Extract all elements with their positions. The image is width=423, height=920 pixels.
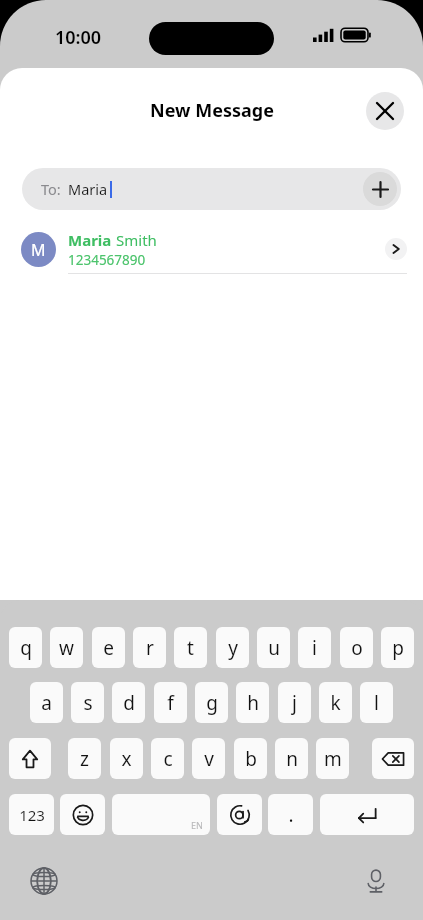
staticText: q [20, 635, 32, 661]
button[interactable]: c [151, 738, 184, 779]
button[interactable]: r [133, 627, 166, 668]
staticText: EN [191, 819, 203, 831]
staticText: o [351, 635, 363, 661]
staticText: s [83, 690, 93, 716]
button[interactable]: s [71, 682, 104, 723]
staticText: Maria [68, 179, 108, 199]
staticText: 1234567890 [68, 251, 146, 269]
staticText: New Message [150, 98, 274, 123]
button[interactable]: g [195, 682, 228, 723]
button[interactable]: Shift [9, 738, 51, 779]
button[interactable]: 123 [9, 794, 54, 835]
button[interactable]: d [112, 682, 145, 723]
button[interactable]: i [298, 627, 331, 668]
button[interactable]: Add contact [363, 172, 397, 206]
button[interactable]: . [268, 794, 313, 835]
button[interactable]: x [110, 738, 143, 779]
button[interactable]: Voice input [358, 863, 394, 899]
button[interactable]: b [234, 738, 267, 779]
button[interactable]: n [275, 738, 308, 779]
button[interactable]: j [278, 682, 311, 723]
staticText: l [374, 690, 379, 716]
staticText: p [392, 635, 404, 661]
staticText: x [121, 746, 132, 772]
staticText: r [146, 635, 154, 661]
button[interactable]: a [30, 682, 63, 723]
button[interactable]: Space [112, 794, 210, 835]
button[interactable]: Close [366, 92, 404, 130]
button[interactable]: e [92, 627, 125, 668]
staticText: Smith [116, 230, 157, 250]
button[interactable]: Backspace [372, 738, 414, 779]
button[interactable]: v [192, 738, 225, 779]
staticText: c [163, 746, 173, 772]
staticText: k [330, 690, 341, 716]
staticText: 10:00 [55, 25, 102, 50]
button[interactable]: M [0, 225, 423, 273]
staticText: v [204, 746, 214, 772]
button[interactable]: w [50, 627, 83, 668]
staticText: i [312, 635, 317, 661]
button[interactable]: Emoji [60, 794, 105, 835]
button[interactable]: l [360, 682, 393, 723]
staticText: g [206, 690, 218, 716]
button[interactable]: To: [22, 168, 401, 210]
button[interactable]: f [154, 682, 187, 723]
button[interactable]: y [216, 627, 249, 668]
button[interactable]: o [340, 627, 373, 668]
staticText: t [187, 635, 194, 661]
button[interactable]: Enter [320, 794, 414, 835]
staticText: j [292, 690, 297, 716]
button[interactable]: h [236, 682, 269, 723]
staticText: n [286, 746, 298, 772]
staticText: d [123, 690, 135, 716]
staticText: m [324, 746, 342, 772]
staticText: To: [41, 179, 61, 199]
button[interactable]: u [257, 627, 290, 668]
staticText: M [31, 239, 46, 261]
staticText: f [167, 690, 174, 716]
button[interactable]: q [9, 627, 42, 668]
button[interactable]: m [316, 738, 349, 779]
staticText: y [228, 635, 238, 661]
staticText: h [247, 690, 259, 716]
button[interactable]: Change language [26, 863, 62, 899]
staticText: a [41, 690, 52, 716]
staticText: . [288, 802, 294, 828]
button[interactable]: z [68, 738, 101, 779]
staticText: z [80, 746, 89, 772]
staticText: u [268, 635, 280, 661]
button[interactable]: Contact details [385, 238, 407, 260]
staticText: w [59, 635, 74, 661]
button[interactable]: p [381, 627, 414, 668]
button[interactable]: At sign [217, 794, 262, 835]
button[interactable]: k [319, 682, 352, 723]
staticText: 123 [19, 805, 45, 825]
button[interactable]: t [174, 627, 207, 668]
staticText: e [103, 635, 114, 661]
staticText: b [245, 746, 257, 772]
staticText: Maria [68, 230, 112, 250]
